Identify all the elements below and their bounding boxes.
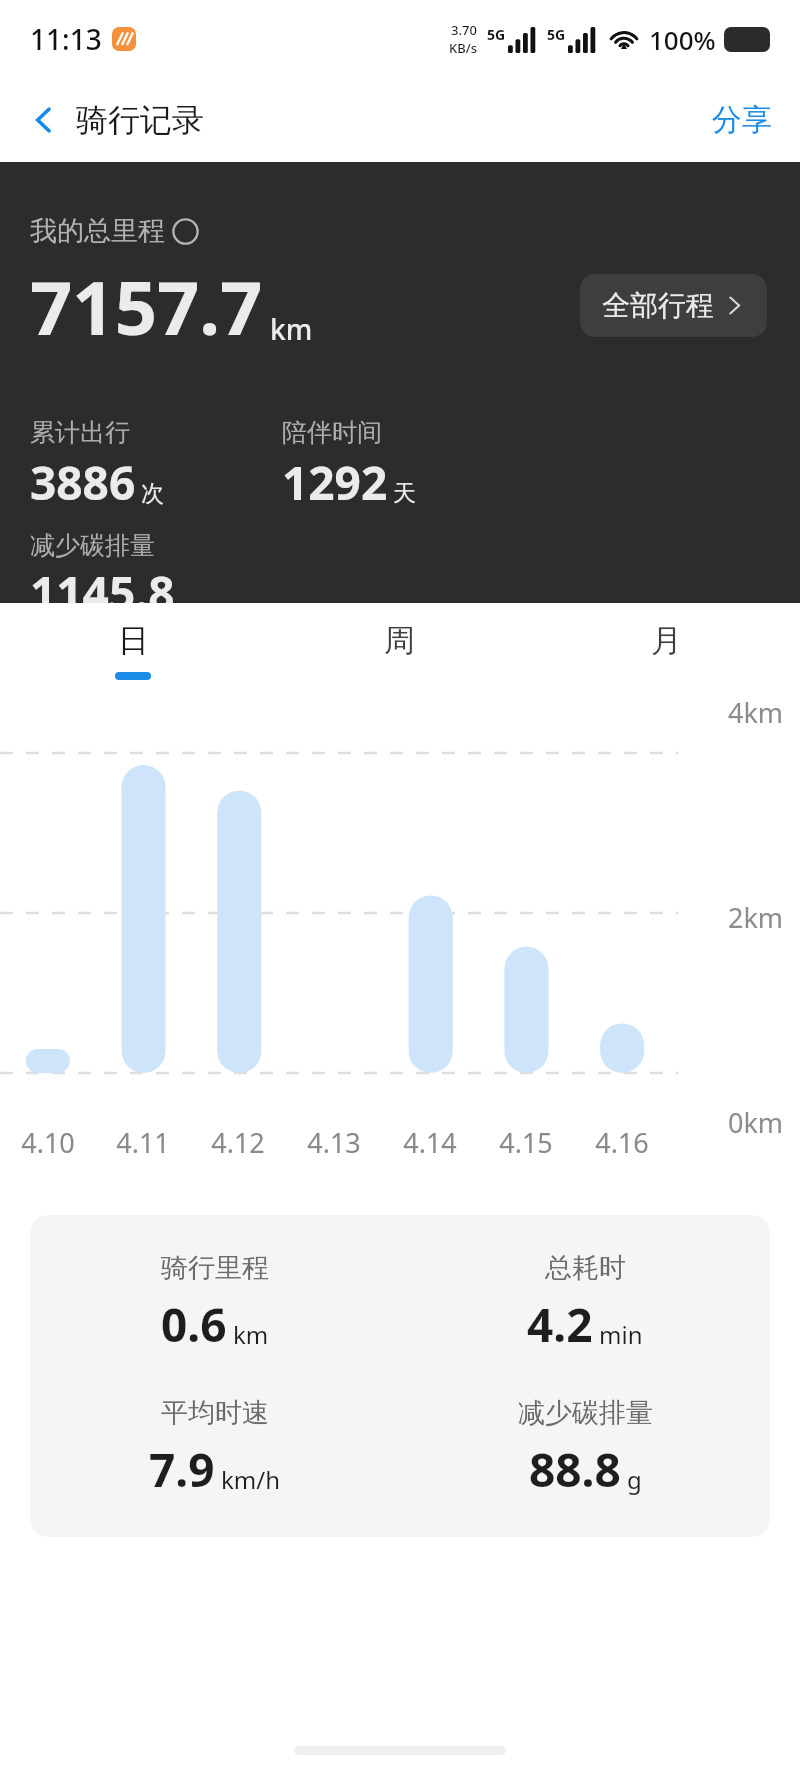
staticText: 4.11: [116, 1124, 170, 1161]
staticText: 骑行记录: [76, 100, 204, 140]
button[interactable]: 分享: [684, 85, 800, 155]
staticText: 1145.8: [30, 561, 175, 603]
staticText: 7157.7: [30, 256, 263, 357]
staticText: 4.2: [527, 1293, 593, 1356]
staticText: 11:13: [30, 20, 102, 58]
staticText: 周: [384, 621, 415, 660]
staticText: km: [270, 310, 313, 348]
staticText: 2km: [728, 899, 784, 936]
staticText: 4km: [728, 694, 784, 731]
button[interactable]: Back: [12, 88, 76, 152]
staticText: 日: [118, 621, 149, 660]
staticText: km: [233, 1318, 269, 1351]
staticText: 分享: [712, 101, 772, 139]
staticText: 4.14: [403, 1124, 457, 1161]
staticText: 减少碳排量: [518, 1396, 653, 1430]
staticText: 7.9: [149, 1438, 215, 1501]
staticText: g: [627, 1463, 642, 1496]
staticText: 减少碳排量: [30, 530, 155, 561]
staticText: 5G: [487, 25, 506, 44]
staticText: 0.6: [161, 1293, 227, 1356]
staticText: 100%: [649, 22, 716, 57]
staticText: 平均时速: [161, 1396, 269, 1430]
staticText: 月: [651, 621, 682, 660]
staticText: 3.70: [451, 21, 477, 39]
button[interactable]: 月: [533, 603, 800, 691]
staticText: 4.10: [21, 1124, 75, 1161]
staticText: 4.13: [307, 1124, 361, 1161]
button[interactable]: 全部行程: [580, 274, 767, 337]
staticText: 4.16: [595, 1124, 649, 1161]
button[interactable]: 周: [266, 603, 533, 691]
staticText: km/h: [221, 1463, 281, 1496]
staticText: 1292: [282, 451, 388, 514]
staticText: 5G: [547, 25, 566, 44]
staticText: min: [599, 1318, 643, 1351]
button[interactable]: 日: [0, 603, 266, 691]
staticText: 0km: [728, 1104, 784, 1141]
staticText: 骑行里程: [161, 1251, 269, 1285]
staticText: KB/s: [449, 39, 478, 57]
staticText: 陪伴时间: [282, 417, 382, 448]
staticText: 我的总里程: [30, 214, 165, 248]
staticText: 次: [141, 479, 164, 508]
staticText: 4.12: [211, 1124, 265, 1161]
staticText: 88.8: [529, 1438, 621, 1501]
staticText: 天: [393, 479, 416, 508]
staticText: 全部行程: [602, 288, 714, 323]
staticText: 4.15: [499, 1124, 553, 1161]
staticText: 3886: [30, 451, 136, 514]
staticText: 累计出行: [30, 417, 130, 448]
staticText: 总耗时: [545, 1251, 626, 1285]
